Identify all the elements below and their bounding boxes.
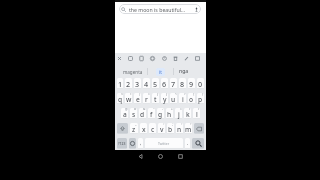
staticText: i bbox=[182, 95, 184, 104]
staticText: j bbox=[178, 110, 180, 119]
button[interactable] bbox=[129, 138, 136, 149]
staticText: ] bbox=[166, 93, 168, 96]
button[interactable] bbox=[117, 56, 122, 61]
staticText: it bbox=[159, 69, 162, 75]
button[interactable]: = bbox=[175, 108, 182, 119]
button[interactable]: > bbox=[179, 93, 186, 104]
staticText: t bbox=[154, 95, 157, 104]
button[interactable]: ? bbox=[185, 123, 192, 134]
button[interactable] bbox=[184, 56, 189, 61]
button[interactable] bbox=[158, 154, 163, 159]
staticText: x bbox=[142, 125, 146, 134]
button[interactable]: ) bbox=[193, 108, 200, 119]
button[interactable]: . bbox=[185, 138, 190, 149]
staticText: . bbox=[187, 140, 189, 147]
button[interactable]: it bbox=[148, 66, 173, 77]
staticText: @ bbox=[125, 108, 128, 111]
button[interactable]: = bbox=[143, 93, 150, 104]
button[interactable]: & bbox=[139, 108, 146, 119]
button[interactable]: @ bbox=[121, 108, 128, 119]
button[interactable]: 1 bbox=[117, 78, 123, 89]
button[interactable]: { bbox=[188, 93, 195, 104]
staticText: l bbox=[196, 110, 198, 119]
button[interactable] bbox=[192, 138, 204, 149]
button[interactable]: + bbox=[166, 108, 173, 119]
staticText: | bbox=[139, 93, 141, 96]
button[interactable]: ] bbox=[161, 93, 168, 104]
button[interactable]: nga bbox=[174, 66, 206, 77]
staticText: e bbox=[136, 95, 140, 104]
button[interactable] bbox=[138, 154, 143, 159]
button[interactable] bbox=[178, 154, 183, 159]
staticText: 6 bbox=[162, 79, 167, 89]
staticText: , bbox=[140, 140, 142, 147]
button[interactable]: < bbox=[170, 93, 177, 104]
button[interactable]: \ bbox=[125, 93, 132, 104]
staticText: { bbox=[193, 93, 195, 96]
button[interactable]: 6 bbox=[161, 78, 168, 89]
button[interactable]: 5 bbox=[152, 78, 159, 89]
staticText: = bbox=[180, 108, 182, 111]
staticText: } bbox=[202, 93, 204, 96]
button[interactable]: 9 bbox=[188, 78, 195, 89]
staticText: z bbox=[132, 125, 136, 134]
staticText: = bbox=[148, 93, 150, 96]
button[interactable]: ! bbox=[176, 123, 183, 134]
button[interactable]: the moon is beautiful... bbox=[119, 4, 201, 14]
staticText: n bbox=[177, 125, 182, 134]
staticText: ? bbox=[190, 123, 192, 126]
staticText: magenta bbox=[123, 69, 143, 75]
staticText: m bbox=[185, 125, 192, 134]
button[interactable]: magenta bbox=[115, 66, 147, 77]
button[interactable] bbox=[139, 56, 144, 61]
button[interactable]: : bbox=[158, 123, 165, 134]
staticText: ) bbox=[198, 108, 199, 111]
staticText: - bbox=[162, 108, 164, 111]
staticText: 2 bbox=[126, 79, 131, 89]
staticText: f bbox=[150, 110, 153, 119]
button[interactable] bbox=[195, 56, 200, 61]
staticText: [ bbox=[157, 93, 159, 96]
button[interactable]: } bbox=[197, 93, 204, 104]
staticText: # bbox=[134, 108, 137, 111]
button[interactable]: , bbox=[138, 138, 143, 149]
staticText: < bbox=[175, 93, 177, 96]
button[interactable]: # bbox=[130, 108, 137, 119]
button[interactable]: " bbox=[140, 123, 147, 134]
button[interactable]: ; bbox=[167, 123, 174, 134]
staticText: ; bbox=[172, 123, 173, 126]
button[interactable]: 2 bbox=[125, 78, 132, 89]
button[interactable] bbox=[117, 123, 128, 134]
button[interactable]: 3 bbox=[134, 78, 141, 89]
button[interactable]: ?123 bbox=[117, 138, 127, 149]
staticText: w bbox=[126, 95, 132, 104]
staticText: 5 bbox=[153, 79, 158, 89]
staticText: Twitter bbox=[158, 141, 170, 146]
button[interactable] bbox=[128, 56, 133, 61]
button[interactable] bbox=[173, 56, 178, 61]
staticText: % bbox=[121, 93, 123, 96]
button[interactable]: [ bbox=[152, 93, 159, 104]
button[interactable]: | bbox=[134, 93, 141, 104]
button[interactable]: % bbox=[117, 93, 123, 104]
staticText: 4 bbox=[144, 79, 149, 89]
button[interactable]: ( bbox=[184, 108, 191, 119]
button[interactable]: 0 bbox=[197, 78, 204, 89]
button[interactable] bbox=[194, 123, 204, 134]
button[interactable]: - bbox=[157, 108, 164, 119]
button[interactable] bbox=[150, 56, 155, 61]
button[interactable]: Twitter bbox=[145, 138, 183, 149]
button[interactable]: 7 bbox=[170, 78, 177, 89]
button[interactable]: 4 bbox=[143, 78, 150, 89]
button[interactable]: * bbox=[148, 108, 155, 119]
staticText: > bbox=[184, 93, 186, 96]
button[interactable]: 8 bbox=[179, 78, 186, 89]
staticText: ! bbox=[181, 123, 182, 126]
staticText: p bbox=[198, 95, 203, 104]
button[interactable]: ' bbox=[149, 123, 156, 134]
button[interactable]: _ bbox=[130, 123, 138, 134]
staticText: nga bbox=[179, 68, 189, 75]
staticText: r bbox=[145, 95, 148, 104]
button[interactable] bbox=[162, 56, 167, 61]
